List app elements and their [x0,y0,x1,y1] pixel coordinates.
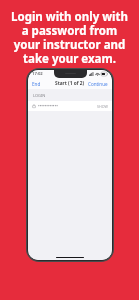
staticText: End [32,81,41,87]
staticText: LOGIN [33,93,46,98]
staticText: Start (1 of 2) [55,80,85,87]
staticText: Continue [88,81,108,87]
button[interactable]: Continue [84,78,112,89]
other: Password field [32,104,36,108]
staticText: •••••••••••• [38,103,97,109]
staticText: SHOW [97,104,108,109]
staticText: 17:02 [32,71,43,77]
button[interactable]: Password field [28,101,112,111]
button[interactable]: End [28,78,45,89]
staticText: Login with only with a password from you… [9,9,130,66]
